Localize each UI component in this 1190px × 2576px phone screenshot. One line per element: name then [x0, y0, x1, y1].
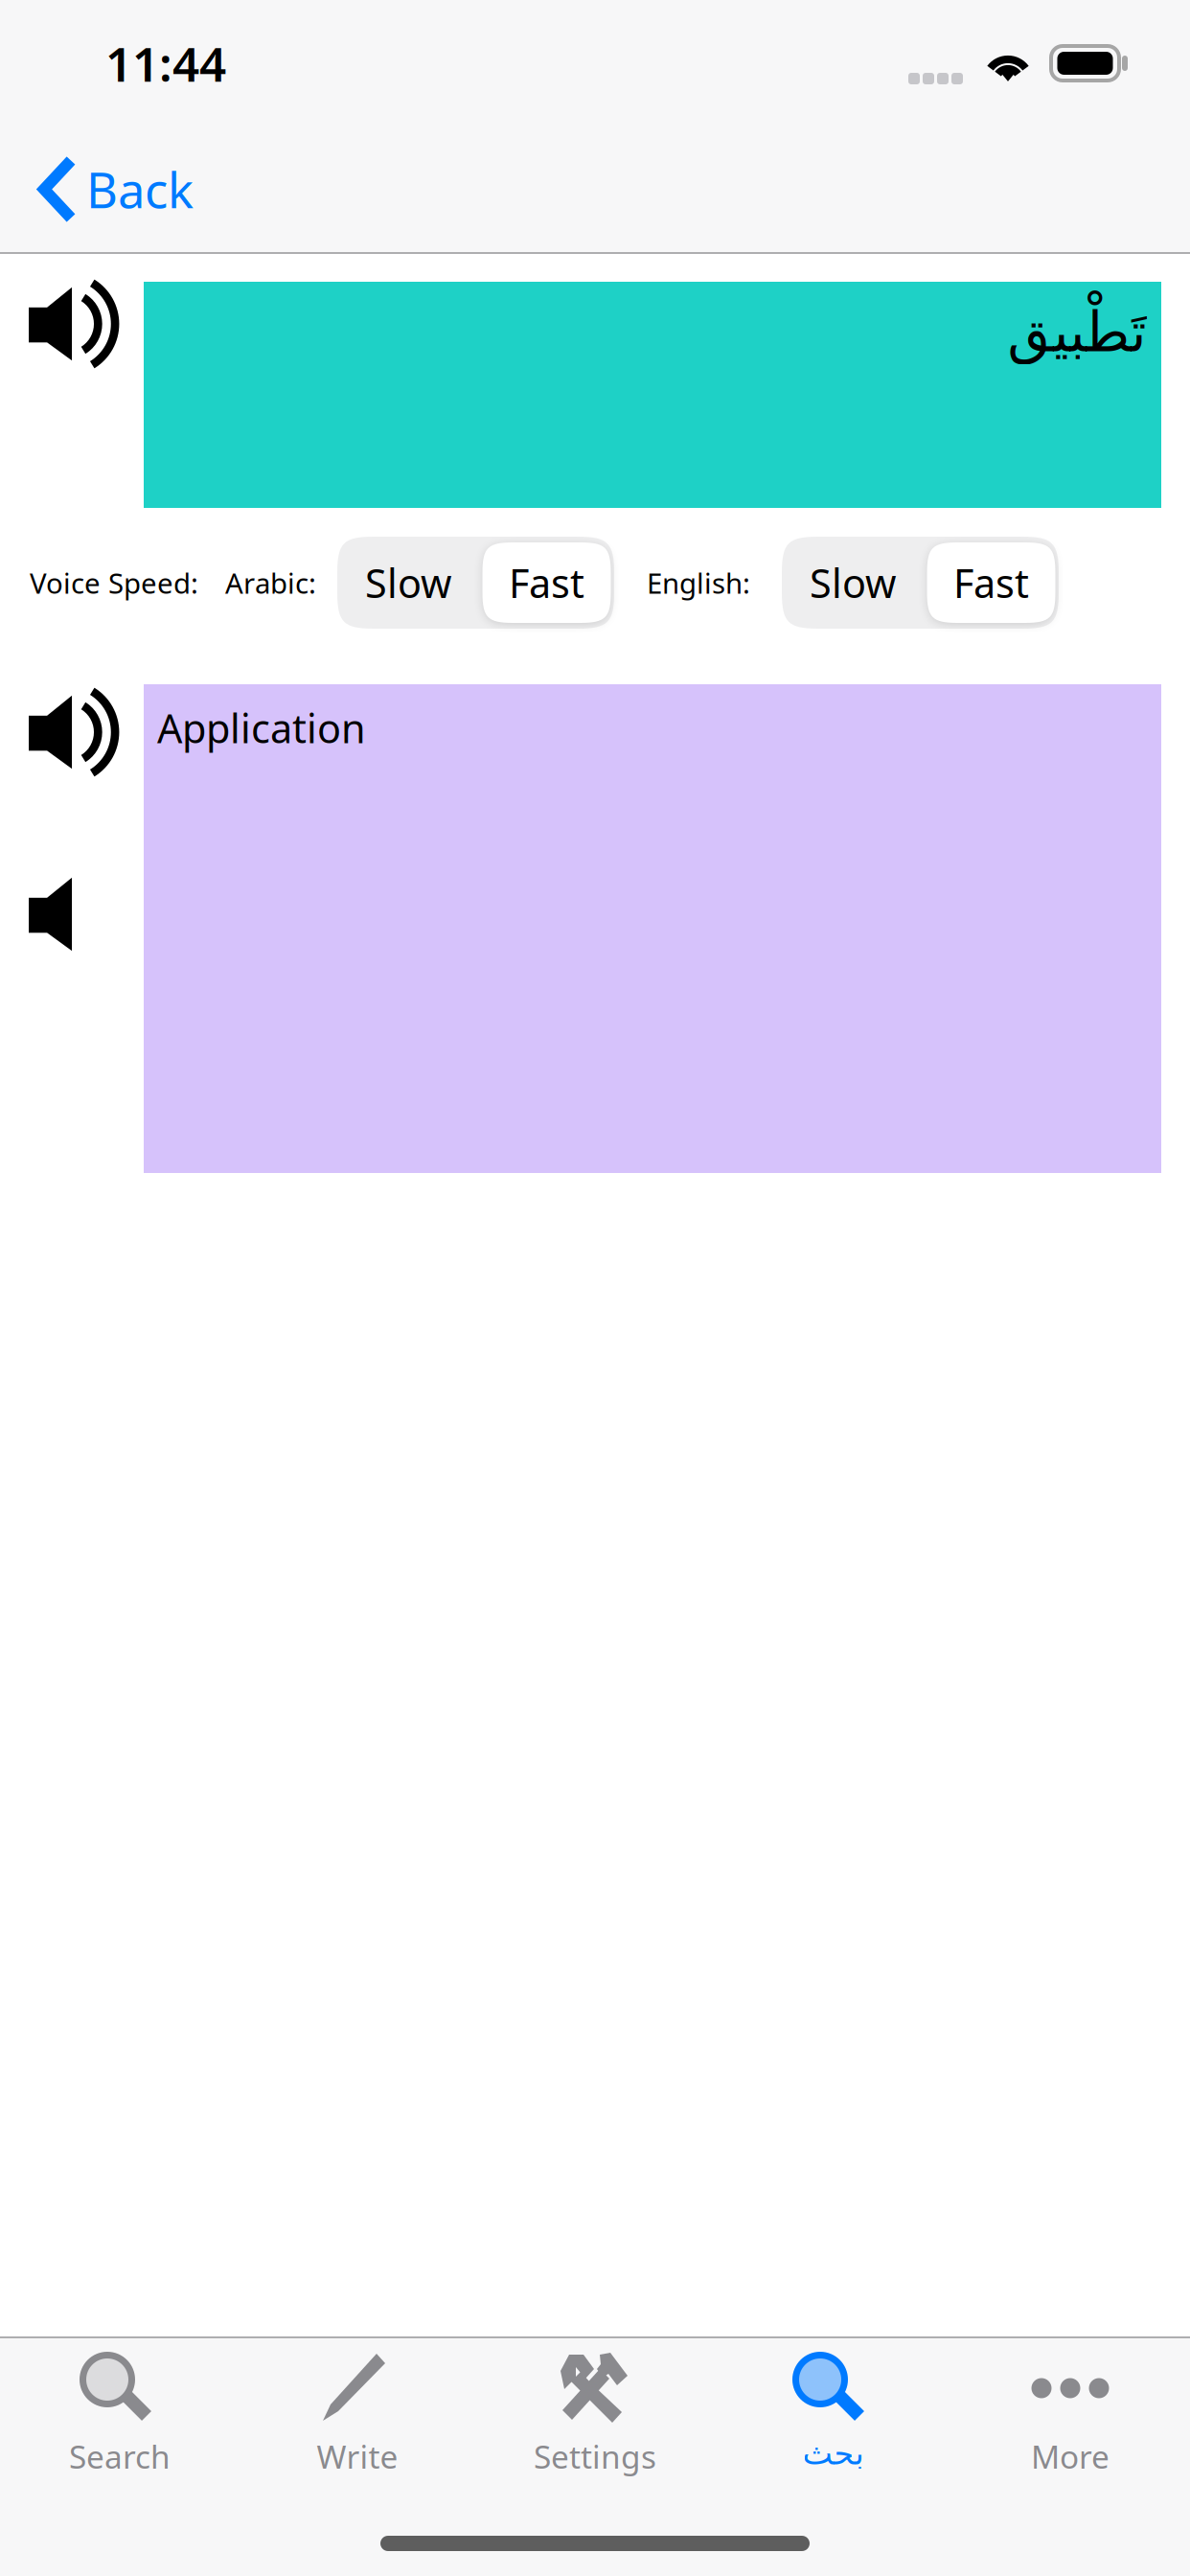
button[interactable]: Slow [782, 537, 924, 629]
button[interactable]: Search [1, 2338, 239, 2490]
staticText: Settings [534, 2435, 656, 2478]
staticText: More [1031, 2435, 1110, 2478]
button[interactable]: Back [0, 126, 217, 252]
staticText: Voice Speed: [30, 564, 198, 601]
staticText: Write [317, 2435, 398, 2478]
button[interactable]: Play English [0, 684, 144, 772]
button[interactable]: بحث [714, 2338, 951, 2490]
button[interactable]: Play Arabic [0, 282, 144, 508]
button[interactable]: Play English slowly [0, 772, 144, 954]
button[interactable]: Slow [337, 537, 479, 629]
staticText: Back [86, 157, 194, 222]
staticText: Arabic: [225, 564, 316, 601]
staticText: 11:44 [105, 32, 226, 95]
button[interactable]: Write [239, 2338, 476, 2490]
staticText: بحث [802, 2435, 863, 2471]
button[interactable]: Fast [924, 537, 1059, 629]
button[interactable]: Fast [479, 537, 614, 629]
staticText: Slow [810, 556, 896, 609]
staticText: Fast [509, 556, 584, 609]
staticText: تَطْبيق [1007, 301, 1146, 363]
staticText: Search [69, 2435, 171, 2478]
button[interactable]: Settings [476, 2338, 714, 2490]
staticText: Slow [365, 556, 451, 609]
staticText: Application [157, 701, 366, 754]
staticText: English: [647, 564, 750, 601]
staticText: Fast [953, 556, 1029, 609]
button[interactable]: More [951, 2338, 1189, 2490]
